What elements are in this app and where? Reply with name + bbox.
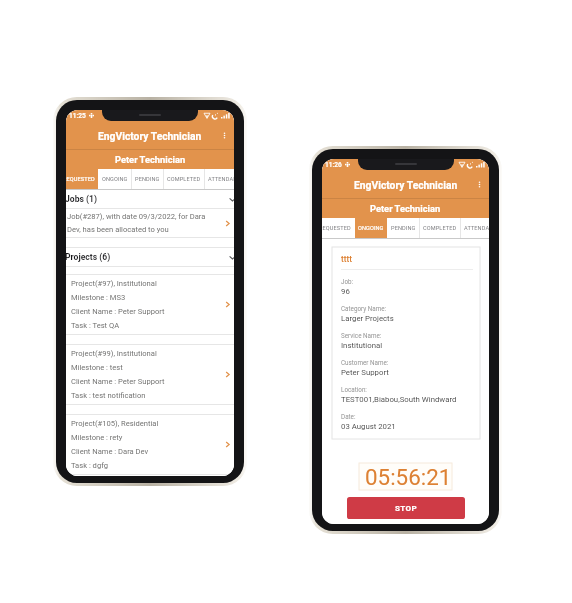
button[interactable]: Projects (6) — [66, 248, 234, 266]
staticText: Peter Support — [341, 368, 389, 377]
staticText: Customer Name: — [341, 359, 389, 366]
button[interactable]: REQUESTED — [66, 169, 98, 189]
staticText: EngVictory Technician — [354, 179, 458, 191]
staticText: EngVictory Technician — [98, 130, 202, 142]
button[interactable]: COMPLETED — [164, 169, 204, 189]
button[interactable]: Project(#99), Institutional — [66, 345, 234, 404]
button[interactable]: More options — [475, 180, 489, 189]
staticText: Task : test notification — [71, 391, 146, 400]
button[interactable]: ATTENDANCE — [461, 218, 483, 238]
staticText: Job: — [341, 278, 354, 285]
staticText: Project(#105), Residential — [71, 419, 159, 428]
staticText: Milestone : rety — [71, 433, 123, 442]
staticText: 11:26 — [325, 161, 342, 169]
button[interactable]: ATTENDANCE — [205, 169, 228, 189]
staticText: Task : Test QA — [71, 321, 120, 330]
staticText: Service Name: — [341, 332, 382, 339]
staticText: COMPLETED — [423, 225, 457, 232]
staticText: PENDING — [391, 225, 416, 232]
staticText: Location: — [341, 386, 367, 393]
button[interactable]: Jobs (1) — [66, 190, 234, 208]
staticText: Category Name: — [341, 305, 387, 312]
staticText: tttt — [341, 254, 352, 264]
staticText: REQUESTED — [322, 225, 351, 232]
button[interactable]: ONGOING — [99, 169, 131, 189]
staticText: Client Name : Dara Dev — [71, 447, 149, 456]
staticText: 11:25 — [69, 112, 86, 120]
staticText: 96 — [341, 287, 350, 296]
staticText: ATTENDANCE — [464, 225, 480, 232]
staticText: Project(#97), Institutional — [71, 279, 157, 288]
staticText: Institutional — [341, 341, 383, 350]
staticText: Date: — [341, 413, 356, 420]
staticText: Job(#287), with date 09/3/2022, for Dara… — [67, 212, 220, 234]
button[interactable]: PENDING — [388, 218, 419, 238]
staticText: 03 August 2021 — [341, 422, 396, 431]
staticText: Larger Projects — [341, 314, 394, 323]
button[interactable]: COMPLETED — [420, 218, 460, 238]
staticText: Client Name : Peter Support — [71, 307, 165, 316]
staticText: ONGOING — [358, 225, 384, 232]
button[interactable]: STOP — [347, 497, 465, 519]
staticText: COMPLETED — [167, 176, 201, 183]
button[interactable]: PENDING — [132, 169, 163, 189]
button[interactable]: REQUESTED — [322, 218, 354, 238]
button[interactable]: ONGOING — [355, 218, 387, 238]
button[interactable]: Project(#97), Institutional — [66, 275, 234, 334]
staticText: Jobs (1) — [66, 194, 98, 204]
button[interactable]: Project(#105), Residential — [66, 415, 234, 474]
staticText: Client Name : Peter Support — [71, 377, 165, 386]
button[interactable]: Job(#287), with date 09/3/2022, for Dara… — [66, 209, 234, 237]
staticText: Task : dgfg — [71, 461, 108, 470]
staticText: TEST001,Biabou,South Windward — [341, 395, 457, 404]
staticText: PENDING — [135, 176, 160, 183]
staticText: STOP — [395, 504, 418, 513]
staticText: REQUESTED — [66, 176, 95, 183]
staticText: ATTENDANCE — [208, 176, 225, 183]
staticText: Peter Technician — [115, 154, 186, 165]
staticText: Project(#99), Institutional — [71, 349, 157, 358]
staticText: Milestone : MS3 — [71, 293, 126, 302]
staticText: Milestone : test — [71, 363, 123, 372]
staticText: 05:56:21 — [365, 464, 452, 490]
staticText: Projects (6) — [66, 252, 111, 262]
button[interactable]: More options — [220, 131, 234, 140]
staticText: Peter Technician — [370, 203, 441, 214]
staticText: ONGOING — [102, 176, 128, 183]
